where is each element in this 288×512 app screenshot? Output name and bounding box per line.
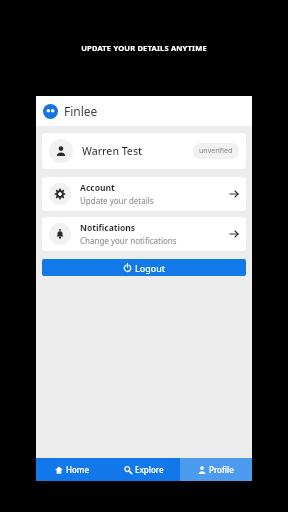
- button[interactable]: Notifications: [42, 217, 246, 251]
- other: Notifications: [49, 223, 71, 245]
- staticText: unverified: [199, 146, 233, 156]
- staticText: Account: [80, 182, 115, 194]
- other: Account: [49, 183, 71, 205]
- staticText: Update your details: [80, 195, 154, 206]
- button[interactable]: Logout: [42, 259, 246, 276]
- staticText: Change your notifications: [80, 235, 177, 246]
- button[interactable]: Explore: [108, 458, 180, 481]
- staticText: Notifications: [80, 222, 136, 234]
- staticText: Explore: [135, 464, 164, 475]
- button[interactable]: Account: [42, 177, 246, 211]
- other: Finlee logo: [43, 104, 58, 119]
- staticText: Profile: [209, 464, 234, 475]
- staticText: Logout: [135, 262, 165, 274]
- staticText: Home: [66, 464, 90, 475]
- button[interactable]: Home: [36, 458, 108, 481]
- staticText: Finlee: [64, 103, 98, 119]
- staticText: UPDATE YOUR DETAILS ANYTIME: [81, 43, 207, 53]
- button[interactable]: Warren Test: [42, 133, 246, 169]
- button[interactable]: Profile: [180, 458, 252, 481]
- staticText: Warren Test: [82, 144, 143, 158]
